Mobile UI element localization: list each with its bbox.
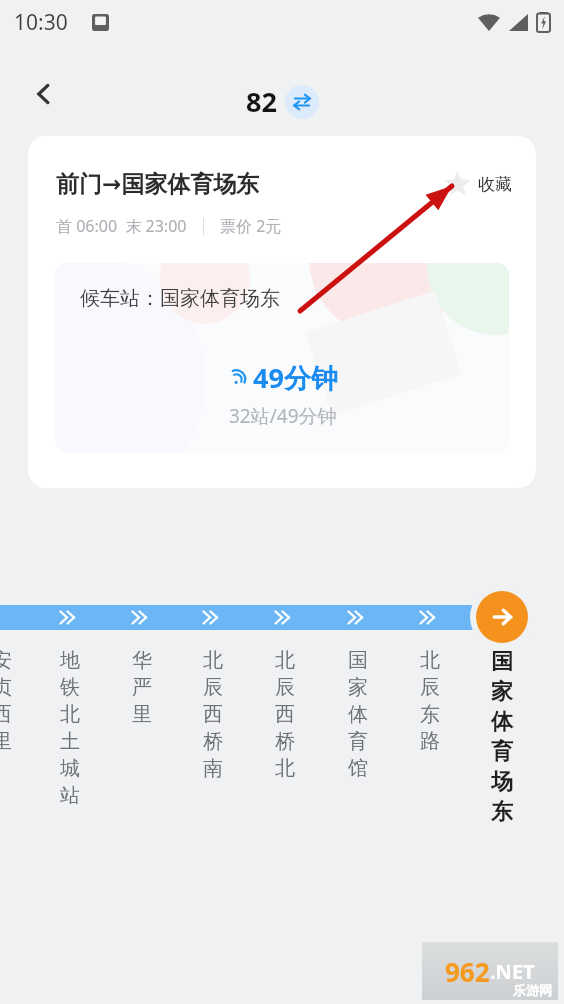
staticText: 前门→国家体育场东: [56, 170, 260, 199]
staticText: 票价 2元: [220, 215, 282, 237]
staticText: 育: [487, 738, 517, 766]
staticText: 首 06:00 末 23:00: [56, 215, 187, 237]
staticText: 49分钟: [253, 359, 338, 396]
staticText: 乐游网: [513, 982, 552, 998]
staticText: 家: [343, 675, 373, 700]
staticText: 收藏: [478, 174, 512, 195]
staticText: 路: [415, 729, 445, 754]
staticText: 安: [0, 648, 17, 673]
button[interactable]: 安: [0, 648, 17, 756]
staticText: 北: [198, 648, 228, 673]
staticText: 北: [415, 648, 445, 673]
staticText: 东: [487, 798, 517, 826]
staticText: 体: [343, 702, 373, 727]
staticText: 东: [415, 702, 445, 727]
staticText: 馆: [343, 756, 373, 781]
staticText: 铁: [55, 675, 85, 700]
staticText: 西: [0, 702, 17, 727]
button[interactable]: 地: [55, 648, 85, 810]
staticText: 962: [445, 954, 490, 989]
staticText: 西: [270, 702, 300, 727]
staticText: 辰: [198, 675, 228, 700]
button[interactable]: 北: [198, 648, 228, 783]
button[interactable]: 前门→国家体育场东: [28, 136, 536, 488]
staticText: 10:30: [14, 8, 68, 37]
staticText: 北: [270, 756, 300, 781]
staticText: 体: [487, 708, 517, 736]
staticText: 里: [0, 729, 17, 754]
staticText: 桥: [270, 729, 300, 754]
button[interactable]: 北: [415, 648, 445, 756]
staticText: .NET: [490, 958, 535, 985]
button[interactable]: 北: [270, 648, 300, 783]
button[interactable]: 收藏: [444, 171, 512, 198]
button[interactable]: 国: [487, 648, 517, 828]
button[interactable]: 华: [127, 648, 157, 729]
staticText: 32站/49分钟: [229, 403, 337, 429]
staticText: 场: [487, 768, 517, 796]
staticText: 地: [55, 648, 85, 673]
button[interactable]: Swap direction: [285, 85, 319, 119]
staticText: 土: [55, 729, 85, 754]
staticText: 辰: [415, 675, 445, 700]
staticText: 里: [127, 702, 157, 727]
staticText: 南: [198, 756, 228, 781]
staticText: 北: [270, 648, 300, 673]
staticText: 育: [343, 729, 373, 754]
staticText: 辰: [270, 675, 300, 700]
staticText: 西: [198, 702, 228, 727]
staticText: 贞: [0, 675, 17, 700]
button[interactable]: Back: [18, 68, 70, 120]
button[interactable]: 国: [343, 648, 373, 783]
staticText: 家: [487, 678, 517, 706]
button[interactable]: Destination: [470, 585, 534, 649]
staticText: 82: [246, 83, 277, 120]
staticText: 北: [55, 702, 85, 727]
staticText: 站: [55, 783, 85, 808]
staticText: 桥: [198, 729, 228, 754]
staticText: 国: [343, 648, 373, 673]
staticText: 严: [127, 675, 157, 700]
staticText: 华: [127, 648, 157, 673]
staticText: 候车站：国家体育场东: [80, 286, 280, 311]
staticText: 城: [55, 756, 85, 781]
staticText: 国: [487, 648, 517, 676]
